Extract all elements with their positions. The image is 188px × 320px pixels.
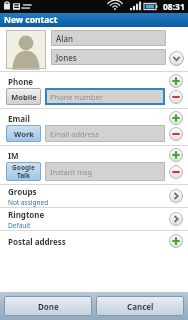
staticText: Email [8, 113, 30, 124]
button[interactable]: Done [4, 296, 92, 316]
staticText: Instant msg [50, 167, 93, 177]
staticText: Phone [8, 76, 34, 87]
button[interactable]: Instant msg [45, 162, 165, 181]
button[interactable]: Add Postal address [169, 234, 183, 248]
button[interactable]: Add Phone [169, 74, 183, 88]
staticText: 08:31 [163, 1, 185, 13]
button[interactable]: Remove IM [169, 165, 183, 179]
button[interactable]: Google Talk [6, 162, 41, 181]
button[interactable]: Ringtone [8, 208, 183, 230]
staticText: Work [14, 129, 34, 139]
other: Open Ringtone [169, 212, 183, 226]
staticText: Cancel [127, 301, 154, 312]
button[interactable]: Cancel [96, 296, 184, 316]
staticText: Not assigned [8, 198, 49, 207]
staticText: Email address [50, 129, 100, 139]
other: Open Groups [169, 189, 183, 203]
staticText: Jones [56, 52, 77, 63]
staticText: IM [8, 150, 19, 161]
button[interactable]: Groups [8, 185, 183, 207]
button[interactable]: Remove Email [169, 127, 183, 141]
button[interactable]: Jones [51, 49, 166, 65]
button[interactable]: Add contact photo [6, 30, 46, 69]
button[interactable]: Postal address [8, 231, 183, 251]
button[interactable]: Mobile [6, 88, 41, 105]
staticText: Postal address [8, 236, 66, 247]
button[interactable]: Email address [45, 125, 165, 142]
button[interactable]: Work [6, 125, 41, 142]
staticText: Ringtone [8, 209, 45, 220]
staticText: Mobile [11, 92, 37, 102]
staticText: Alan [56, 33, 73, 44]
staticText: Phone number [50, 92, 103, 102]
button[interactable]: Add IM [169, 148, 183, 162]
button[interactable]: Phone number [45, 88, 165, 105]
staticText: Groups [8, 186, 37, 197]
staticText: New contact [4, 14, 58, 26]
button[interactable]: Expand name fields [169, 51, 184, 66]
button[interactable]: Remove Phone [169, 90, 183, 104]
staticText: Default [8, 221, 31, 230]
staticText: Done [38, 301, 59, 312]
button[interactable]: Alan [51, 30, 166, 46]
button[interactable]: Add Email [169, 111, 183, 125]
staticText: Google Talk [12, 163, 35, 180]
